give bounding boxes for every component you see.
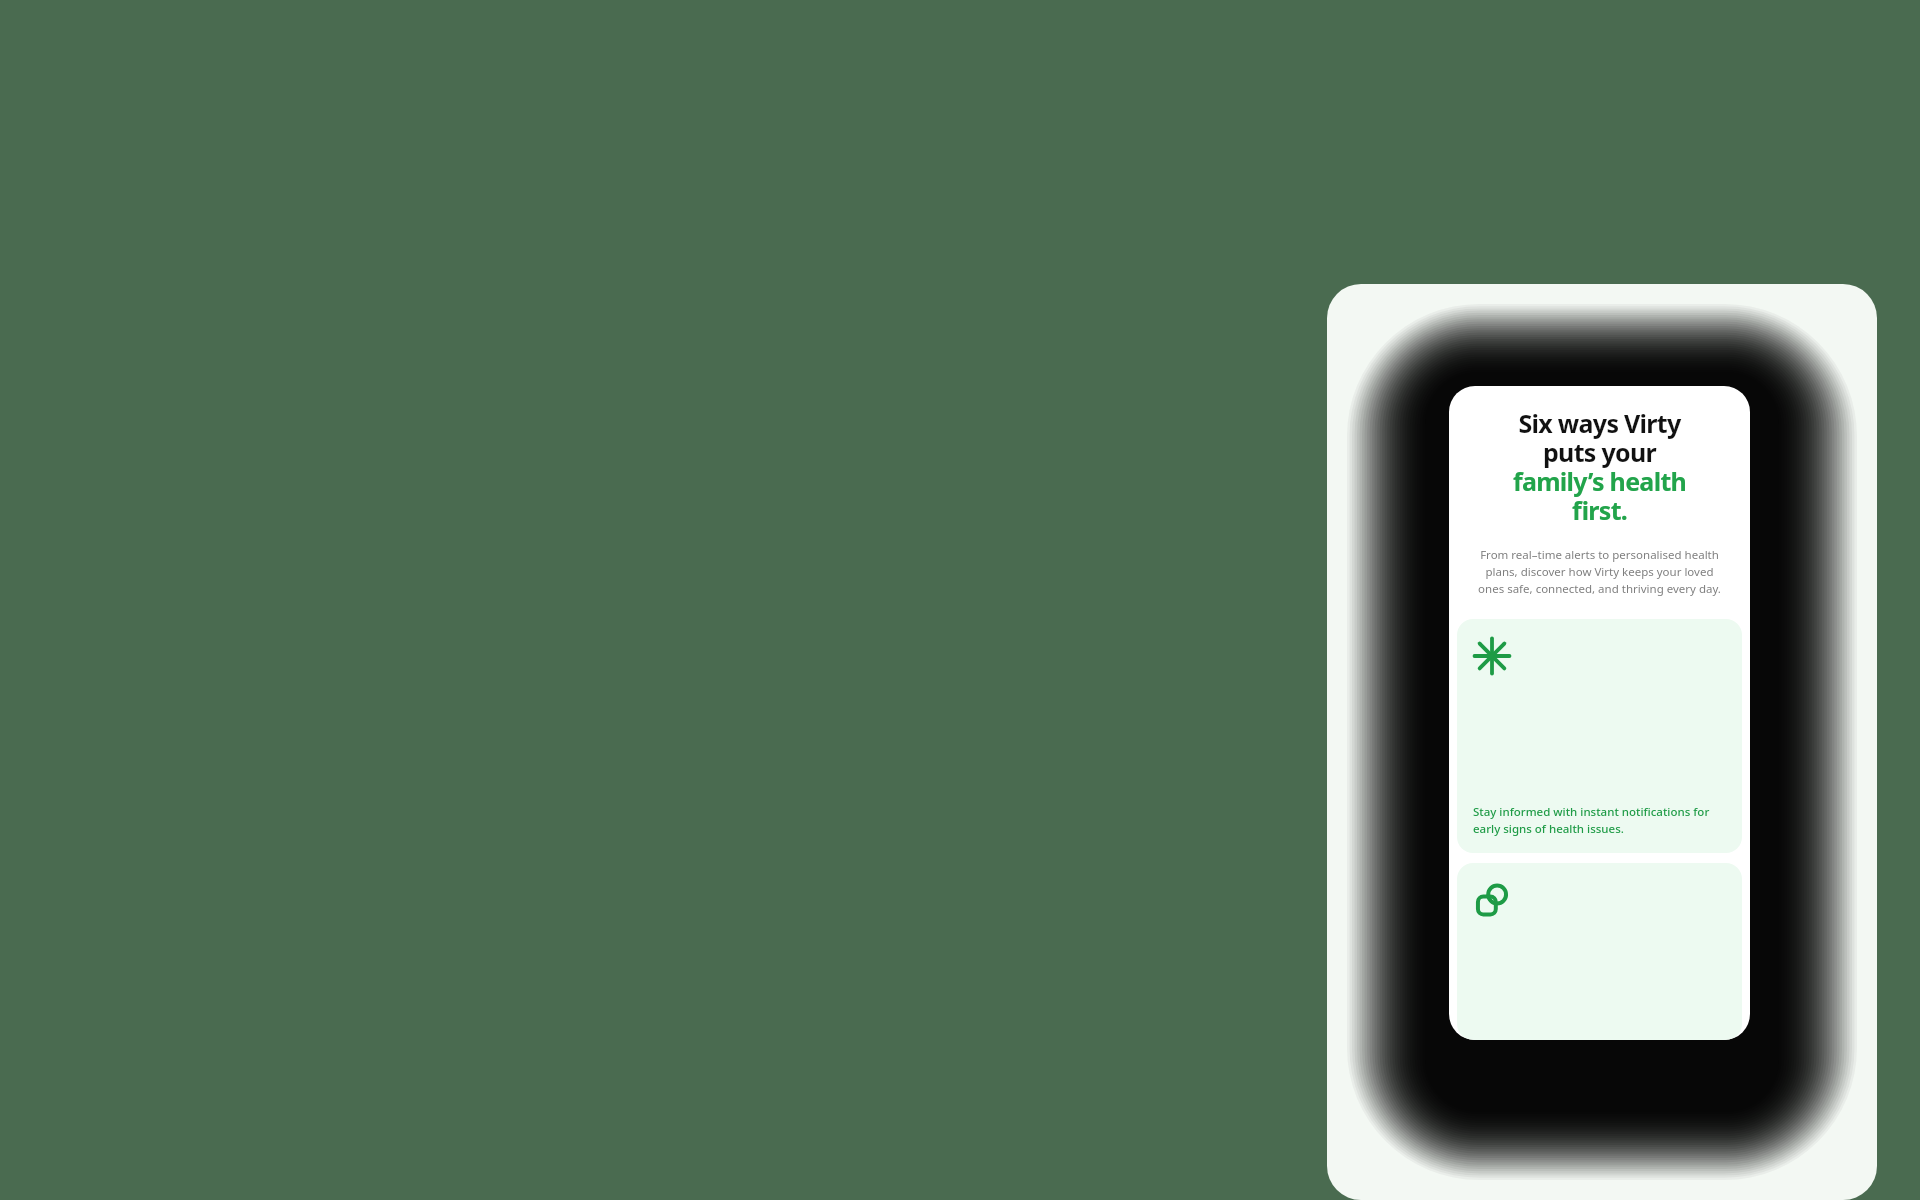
staticText: Six ways Virty puts your family’s health…: [1461, 406, 1738, 527]
button[interactable]: Instant notifications: [1457, 619, 1742, 853]
staticText: Stay informed with instant notifications…: [1473, 804, 1726, 837]
staticText: From real–time alerts to personalised he…: [1471, 547, 1728, 597]
button[interactable]: Connected care: [1457, 863, 1742, 1040]
